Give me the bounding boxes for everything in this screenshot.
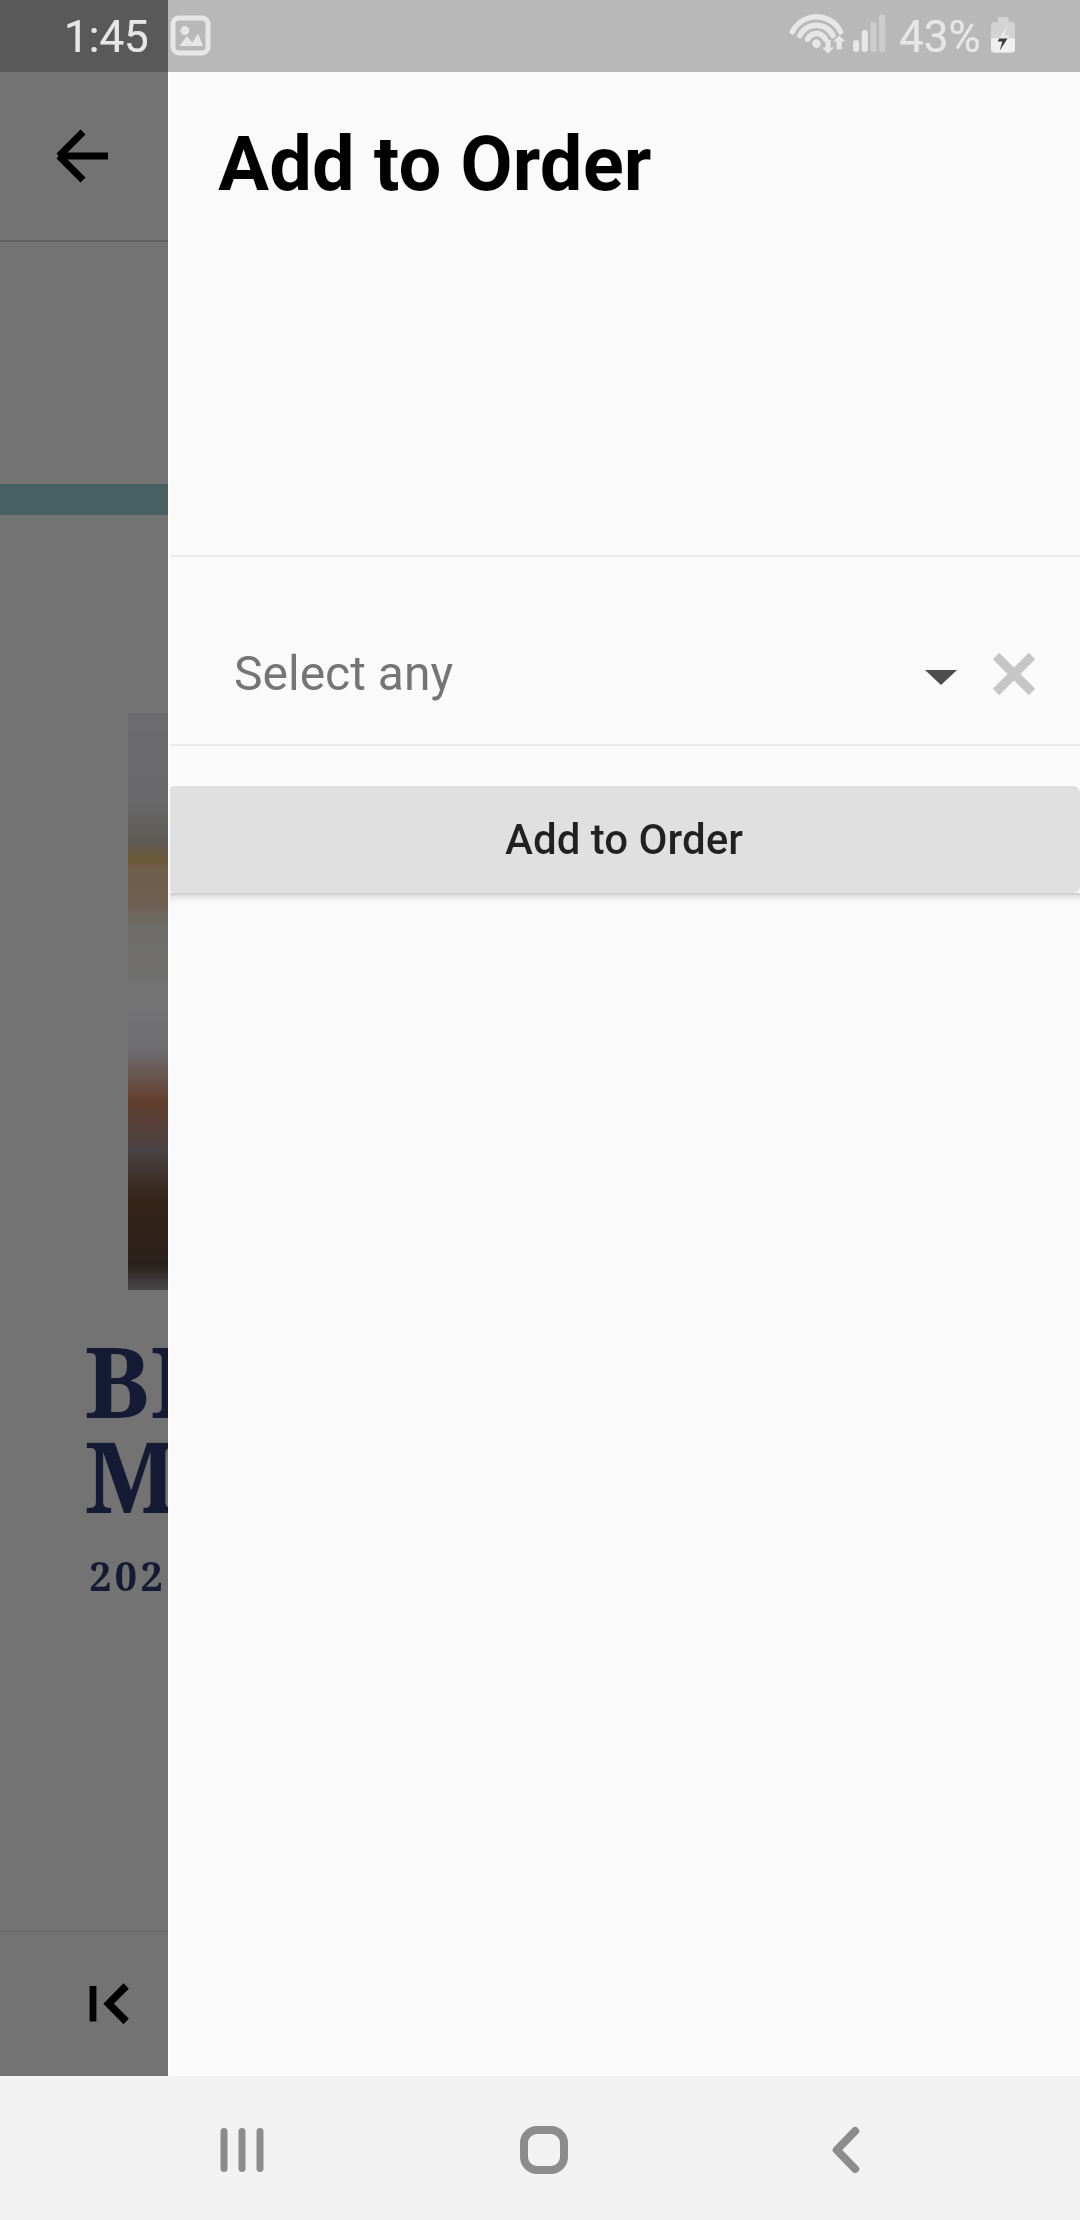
button[interactable]: Home <box>484 2090 604 2210</box>
other: Clear selection <box>993 653 1035 695</box>
button[interactable]: Select any <box>168 557 1080 744</box>
staticText: Add to Order <box>505 815 744 864</box>
staticText: Add to Order <box>218 119 652 208</box>
other: Collapse panel <box>86 1982 132 2028</box>
staticText: M <box>84 1408 168 1541</box>
staticText: Select any <box>234 645 454 701</box>
other: Open dropdown <box>924 658 958 692</box>
button[interactable]: Back <box>786 2090 906 2210</box>
staticText: 202 <box>89 1548 166 1602</box>
button[interactable]: Recent apps <box>182 2090 302 2210</box>
button[interactable]: Add to Order <box>168 786 1080 893</box>
staticText: BR <box>84 1313 168 1446</box>
staticText: 1:45 <box>64 11 149 63</box>
other: Back <box>56 128 112 184</box>
staticText: 43% <box>899 11 981 63</box>
